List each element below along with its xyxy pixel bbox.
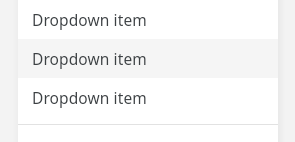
- staticText: Dropdown item: [32, 48, 147, 69]
- button[interactable]: Dropdown item: [18, 78, 278, 117]
- staticText: Dropdown item: [32, 9, 147, 30]
- staticText: Dropdown item: [32, 87, 147, 108]
- button[interactable]: Dropdown item: [18, 39, 278, 78]
- button[interactable]: Dropdown item: [18, 0, 278, 39]
